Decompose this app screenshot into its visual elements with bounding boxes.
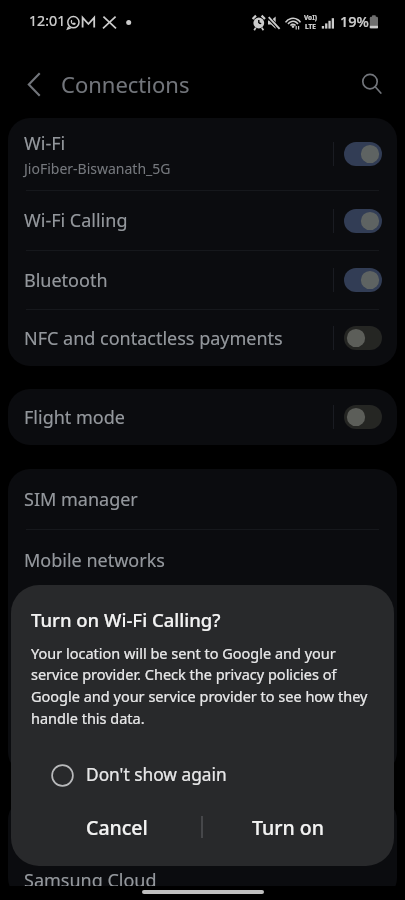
- button[interactable]: Wi-Fi toggle: [339, 130, 387, 178]
- button[interactable]: Data usage: [8, 591, 397, 651]
- button[interactable]: Looking for something else?: [8, 798, 397, 860]
- button[interactable]: Flight mode toggle: [339, 393, 387, 441]
- staticText: Cancel: [86, 814, 148, 841]
- staticText: Mobile Hotspot and Tethering: [24, 670, 277, 695]
- button[interactable]: Flight mode: [8, 389, 397, 445]
- staticText: Don't show again: [86, 763, 227, 787]
- staticText: SIM manager: [24, 487, 138, 512]
- button[interactable]: Turn on: [203, 802, 372, 852]
- button[interactable]: Mobile networks: [8, 530, 397, 590]
- button[interactable]: Home: [142, 890, 264, 894]
- staticText: LTE: [305, 22, 316, 31]
- button[interactable]: Bluetooth toggle: [339, 256, 387, 304]
- staticText: 19%: [340, 11, 369, 31]
- button[interactable]: Wi-Fi Calling: [8, 191, 397, 250]
- button[interactable]: SIM manager: [8, 469, 397, 529]
- staticText: Flight mode: [24, 405, 125, 430]
- staticText: Mobile networks: [24, 548, 165, 573]
- staticText: Your location will be sent to Google and…: [31, 643, 374, 728]
- button[interactable]: Don't show again: [11, 754, 394, 796]
- staticText: 12:01: [29, 11, 66, 30]
- staticText: NFC and contactless payments: [24, 326, 283, 351]
- button[interactable]: Search: [350, 62, 394, 106]
- staticText: Turn on Wi-Fi Calling?: [31, 607, 221, 632]
- button[interactable]: Cancel: [33, 802, 201, 852]
- staticText: Wi-Fi: [24, 131, 66, 156]
- button[interactable]: Mobile Hotspot and Tethering: [8, 652, 397, 712]
- button[interactable]: Wi-Fi Calling toggle: [339, 197, 387, 245]
- button[interactable]: Wi-Fi: [8, 118, 397, 190]
- button[interactable]: Back: [13, 64, 53, 104]
- button[interactable]: NFC and contactless payments: [8, 310, 397, 366]
- button[interactable]: More connection settings: [8, 713, 397, 773]
- button[interactable]: Bluetooth: [8, 251, 397, 309]
- button[interactable]: Samsung Cloud: [8, 861, 397, 900]
- staticText: Turn on: [252, 814, 324, 841]
- staticText: Bluetooth: [24, 268, 108, 293]
- staticText: Connections: [61, 69, 190, 99]
- button[interactable]: NFC and contactless payments toggle: [339, 314, 387, 362]
- staticText: Samsung Cloud: [24, 868, 157, 893]
- staticText: JioFiber-Biswanath_5G: [24, 159, 171, 178]
- staticText: VoI): [304, 13, 317, 22]
- staticText: Wi-Fi Calling: [24, 208, 128, 233]
- staticText: Data usage: [24, 609, 120, 634]
- staticText: Looking for something else?: [24, 817, 263, 842]
